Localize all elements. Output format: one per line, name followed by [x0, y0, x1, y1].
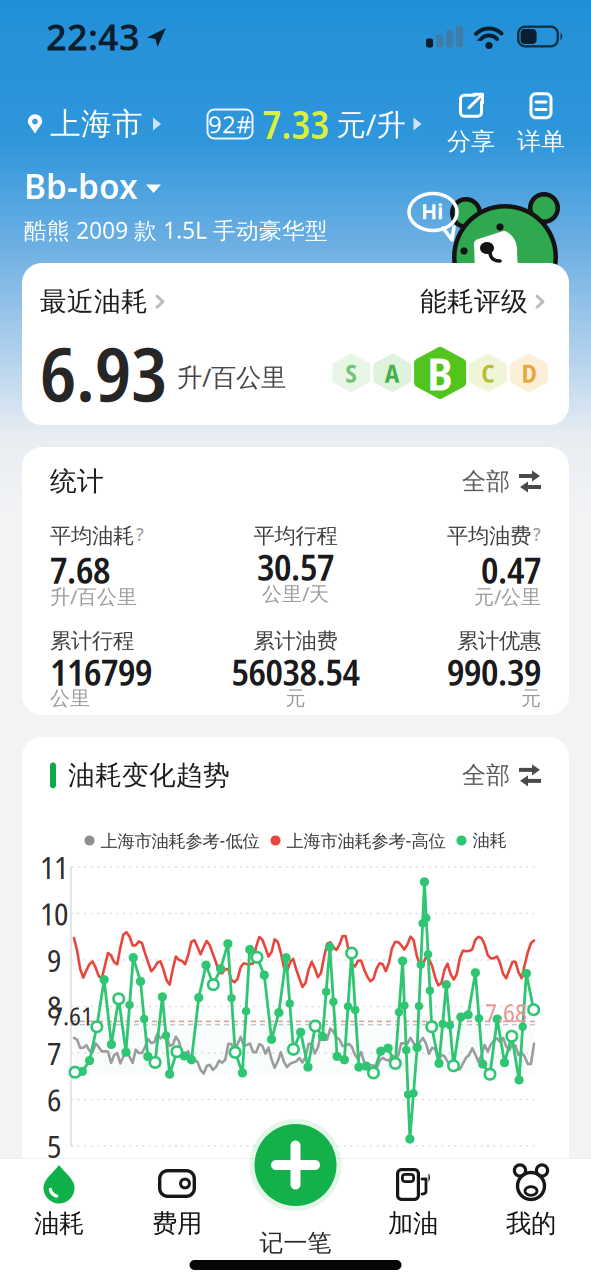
staticText: 最近油耗 — [40, 285, 148, 318]
staticText: 酷熊 2009 款 1.5L 手动豪华型 — [24, 215, 328, 245]
staticText: 记一笔 — [259, 1228, 331, 1258]
staticText: 油耗 — [472, 830, 506, 851]
staticText: 平均行程 — [253, 523, 337, 549]
staticText: ? — [136, 523, 144, 546]
staticText: 7 — [47, 1032, 61, 1074]
staticText: 公里/天 — [262, 580, 329, 607]
staticText: 累计行程 — [50, 628, 134, 654]
staticText: 22:43 — [46, 13, 140, 60]
staticText: A — [385, 356, 400, 390]
staticText: 7.68 — [50, 545, 110, 594]
staticText: 油耗变化趋势 — [68, 759, 230, 792]
staticText: D — [521, 356, 536, 390]
staticText: 元 — [521, 686, 541, 711]
button[interactable]: 记一笔 — [259, 1228, 331, 1258]
staticText: ? — [533, 523, 541, 546]
button[interactable]: 分享 — [447, 92, 495, 156]
staticText: C — [481, 356, 494, 390]
staticText: 能耗评级 — [420, 285, 528, 318]
staticText: 累计优惠 — [457, 628, 541, 654]
staticText: 9 — [47, 939, 61, 981]
staticText: 6 — [47, 1079, 61, 1120]
staticText: 加油 — [388, 1208, 438, 1239]
staticText: S — [345, 356, 357, 390]
staticText: 5 — [47, 1125, 61, 1167]
staticText: 10 — [40, 893, 68, 934]
staticText: 7.33 — [262, 98, 329, 150]
staticText: Hi — [421, 197, 443, 225]
staticText: 费用 — [152, 1208, 202, 1239]
staticText: 11 — [40, 846, 68, 888]
button[interactable]: 详单 — [517, 92, 565, 156]
staticText: 全部 — [462, 467, 510, 496]
staticText: 元/升 — [336, 104, 405, 143]
button[interactable]: 最近油耗 — [40, 285, 165, 318]
button[interactable]: Bb-box — [0, 164, 591, 208]
staticText: 0.47 — [481, 545, 541, 594]
staticText: 116799 — [50, 647, 152, 696]
staticText: 平均油耗 — [50, 523, 134, 549]
button[interactable]: 记一笔 — [254, 1124, 336, 1206]
staticText: 升/百公里 — [177, 360, 286, 394]
staticText: 56038.54 — [231, 647, 359, 696]
staticText: 上海市 — [50, 105, 143, 143]
staticText: 全部 — [462, 761, 510, 790]
staticText: 上海市油耗参考-低位 — [100, 829, 259, 852]
staticText: 8 — [47, 986, 61, 1027]
button[interactable]: 油耗 — [0, 1164, 118, 1239]
staticText: 元/公里 — [474, 583, 541, 610]
staticText: 上海市油耗参考-高位 — [286, 829, 445, 852]
staticText: 累计油费 — [253, 628, 337, 654]
staticText: 平均油费 — [447, 523, 531, 549]
staticText: 升/百公里 — [50, 583, 137, 610]
staticText: Bb-box — [24, 164, 138, 208]
staticText: 92# — [208, 108, 252, 140]
button[interactable]: 费用 — [118, 1164, 236, 1239]
button[interactable]: 能耗评级 — [420, 285, 545, 318]
button[interactable]: 我的 — [472, 1164, 590, 1239]
button[interactable]: 全部 — [462, 467, 541, 496]
staticText: 7.68 — [485, 995, 527, 1030]
staticText: 公里 — [50, 686, 90, 711]
staticText: 分享 — [447, 127, 495, 156]
staticText: 990.39 — [447, 647, 541, 696]
button[interactable]: 加油 — [354, 1164, 472, 1239]
staticText: 油耗 — [34, 1208, 84, 1239]
staticText: 6.93 — [40, 322, 167, 424]
staticText: 我的 — [506, 1208, 556, 1239]
staticText: 7.61 — [51, 998, 93, 1033]
staticText: 统计 — [50, 465, 104, 498]
staticText: 元 — [285, 686, 305, 711]
staticText: 30.57 — [257, 542, 334, 591]
staticText: 详单 — [517, 127, 565, 156]
button[interactable]: 上海市 — [27, 105, 162, 143]
staticText: B — [427, 342, 453, 404]
button[interactable]: 全部 — [462, 761, 541, 790]
button[interactable]: 92# — [206, 98, 422, 150]
